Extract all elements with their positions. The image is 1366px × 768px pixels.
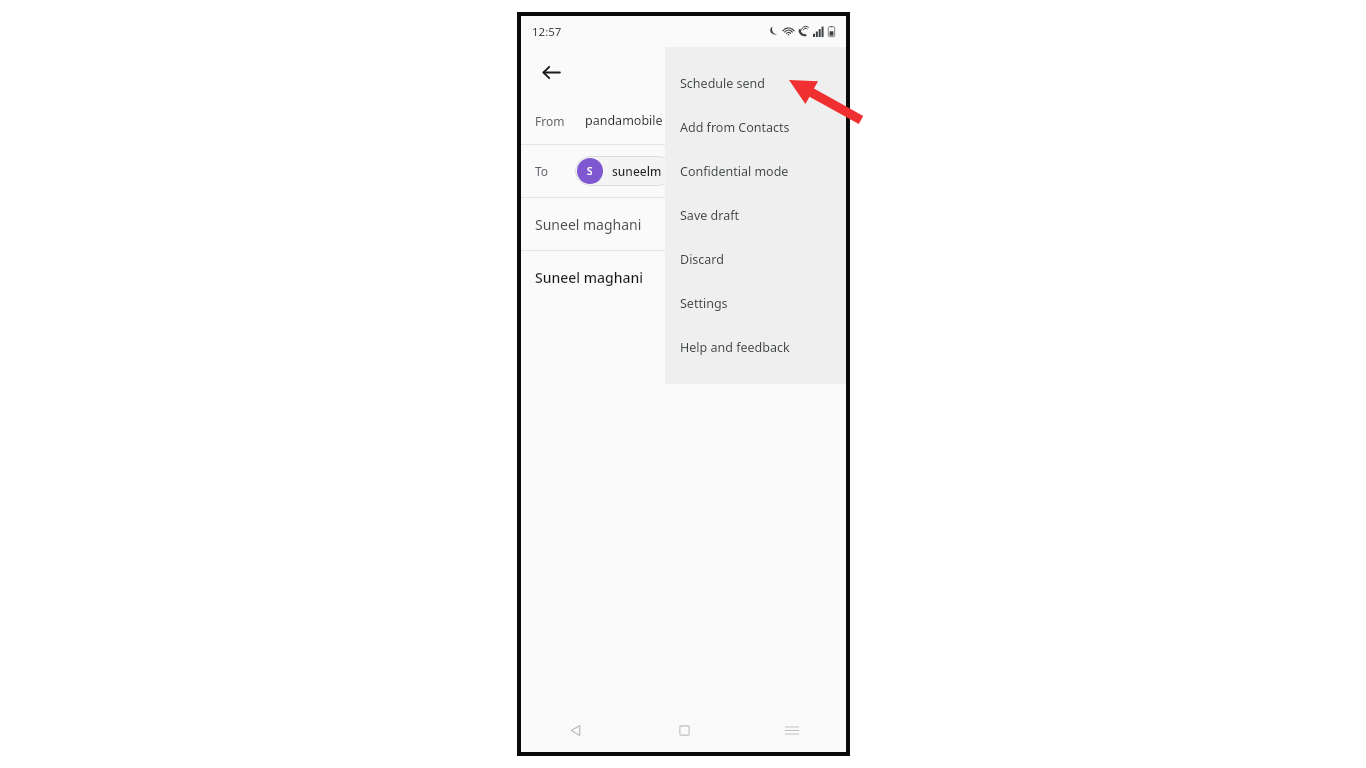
button[interactable]: Help and feedback (665, 325, 846, 369)
button[interactable]: Suneel maghani (521, 251, 846, 303)
button[interactable]: Suneel maghani (521, 198, 846, 250)
staticText: suneelm (612, 163, 662, 179)
staticText: pandamobile (585, 112, 663, 129)
staticText: S (587, 164, 593, 178)
staticText: Suneel maghani (535, 268, 644, 287)
button[interactable]: Schedule send (665, 61, 846, 105)
button[interactable]: Settings (665, 281, 846, 325)
button[interactable]: Back (521, 708, 630, 752)
staticText: Discard (680, 251, 724, 268)
button[interactable]: Add from Contacts (665, 105, 846, 149)
staticText: 12:57 (532, 24, 562, 40)
staticText: To (535, 163, 549, 179)
button[interactable]: Home (630, 708, 738, 752)
button[interactable]: S (575, 156, 674, 186)
staticText: From (535, 113, 565, 129)
button[interactable]: Discard (665, 237, 846, 281)
button[interactable]: To (521, 145, 846, 197)
staticText: Settings (680, 295, 728, 312)
button[interactable]: Save draft (665, 193, 846, 237)
staticText: Schedule send (680, 75, 766, 92)
staticText: Suneel maghani (535, 215, 642, 234)
button[interactable]: Back (535, 56, 567, 88)
staticText: Add from Contacts (680, 119, 790, 136)
staticText: Confidential mode (680, 163, 789, 180)
button[interactable]: Recent apps (738, 708, 846, 752)
button[interactable]: From (521, 97, 846, 144)
staticText: Help and feedback (680, 339, 790, 356)
staticText: Save draft (680, 207, 739, 224)
button[interactable]: Confidential mode (665, 149, 846, 193)
